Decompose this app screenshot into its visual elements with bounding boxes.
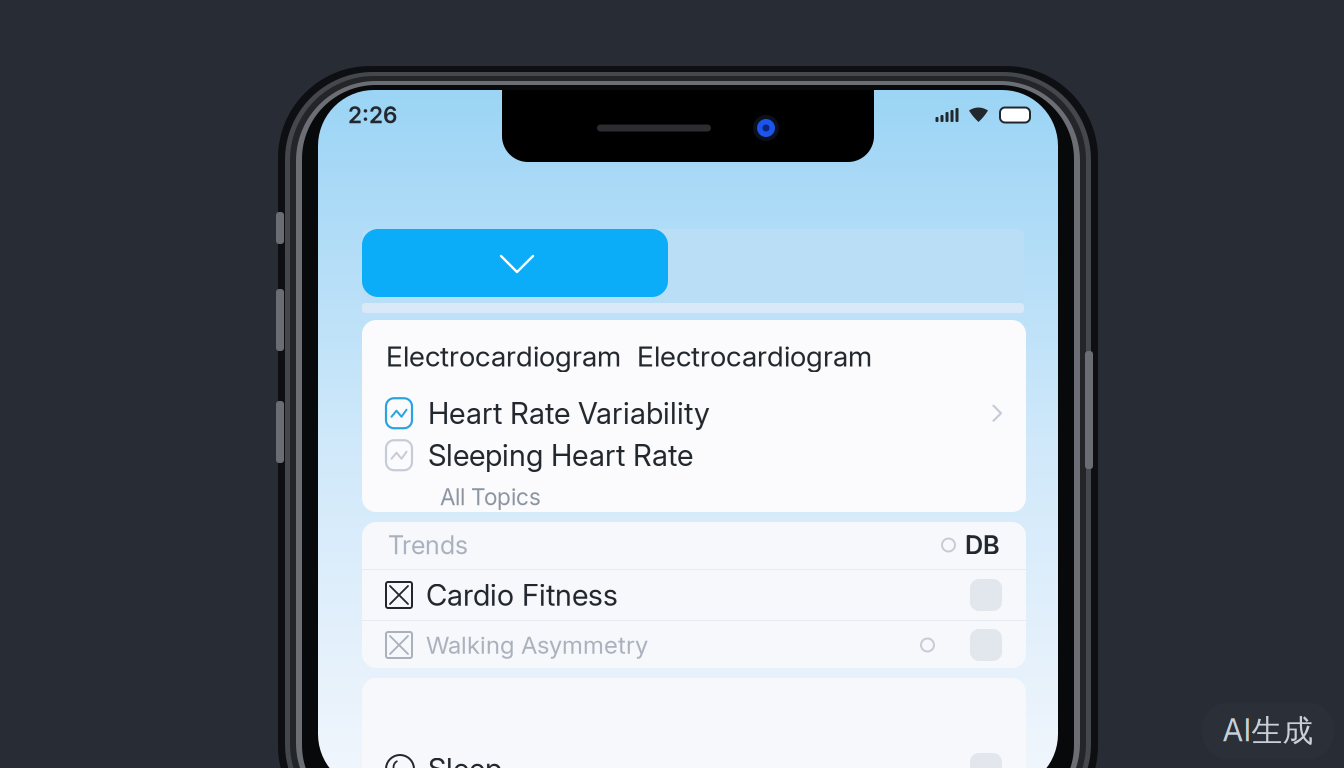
staticText: Sleep [428, 751, 502, 768]
button[interactable]: Show more [362, 229, 668, 297]
button[interactable]: Trends [362, 521, 1026, 569]
button[interactable]: Walking Asymmetry [362, 621, 1026, 669]
staticText: Electrocardiogram Electrocardiogram [386, 339, 872, 373]
staticText: 2:26 [348, 101, 397, 129]
button[interactable]: Sleeping Heart Rate [362, 435, 1026, 475]
staticText: All Topics [440, 483, 541, 511]
staticText: Walking Asymmetry [426, 630, 648, 659]
staticText: Trends [388, 530, 468, 560]
staticText: Heart Rate Variability [428, 395, 710, 431]
button[interactable]: Sleep [362, 742, 1026, 768]
staticText: Cardio Fitness [426, 577, 618, 613]
staticText: DB [965, 530, 1000, 560]
button[interactable]: Cardio Fitness [362, 570, 1026, 620]
button[interactable]: Heart Rate Variability [362, 391, 1026, 435]
staticText: AI生成 [1222, 712, 1313, 750]
staticText: Sleeping Heart Rate [428, 437, 693, 473]
